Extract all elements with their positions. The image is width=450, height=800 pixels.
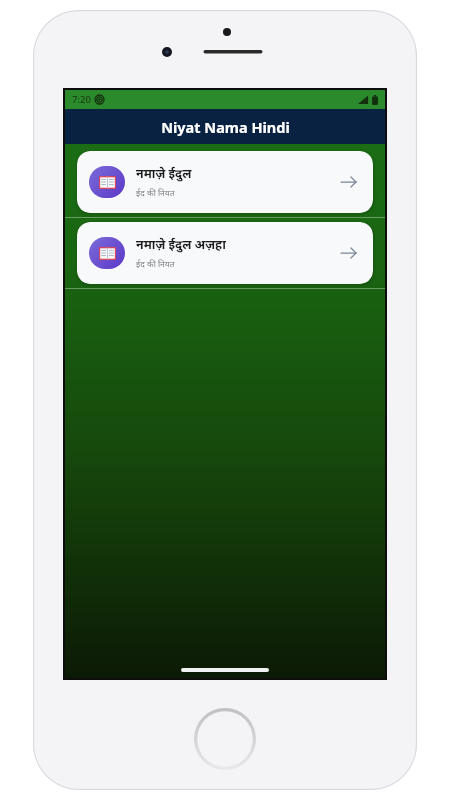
button[interactable]: Open — [335, 240, 361, 266]
staticText: ईद की नियत — [136, 187, 175, 199]
button[interactable]: नमाज़े ईदुल अज़हा — [77, 222, 373, 284]
staticText: ईद की नियत — [136, 258, 175, 270]
staticText: नमाज़े ईदुल — [136, 165, 192, 182]
button[interactable]: नमाज़े ईदुल — [77, 151, 373, 213]
staticText: Niyat Nama Hindi — [161, 117, 290, 137]
staticText: 7:20 — [72, 93, 91, 106]
staticText: नमाज़े ईदुल अज़हा — [136, 236, 226, 253]
button[interactable]: Open — [335, 169, 361, 195]
